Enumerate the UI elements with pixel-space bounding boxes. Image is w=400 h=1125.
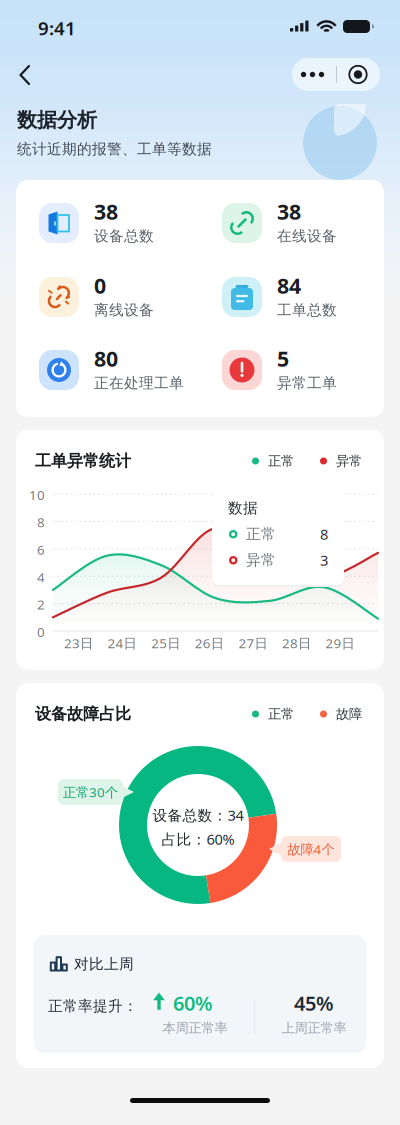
button[interactable]: 0 bbox=[39, 274, 207, 320]
staticText: 8 bbox=[37, 513, 45, 531]
staticText: 正常30个 bbox=[63, 783, 118, 801]
staticText: 正在处理工单 bbox=[94, 374, 184, 392]
staticText: 占比：60% bbox=[161, 829, 234, 849]
staticText: 异常 bbox=[336, 453, 362, 469]
staticText: 3 bbox=[320, 550, 328, 570]
staticText: 故障4个 bbox=[287, 840, 334, 858]
staticText: 上周正常率 bbox=[281, 1020, 346, 1036]
staticText: 9:41 bbox=[38, 16, 76, 40]
staticText: 数据分析 bbox=[17, 108, 97, 132]
staticText: 6 bbox=[37, 541, 45, 558]
staticText: 设备总数 bbox=[94, 227, 154, 245]
staticText: 38 bbox=[277, 197, 301, 226]
staticText: 在线设备 bbox=[277, 227, 337, 245]
staticText: 正常 bbox=[268, 453, 294, 469]
button[interactable]: 更多 bbox=[292, 58, 336, 91]
staticText: 数据 bbox=[228, 499, 258, 517]
button[interactable]: 84 bbox=[222, 274, 390, 320]
staticText: 80 bbox=[94, 344, 118, 373]
staticText: 正常 bbox=[246, 525, 276, 543]
staticText: 设备故障占比 bbox=[35, 704, 131, 724]
staticText: 正常 bbox=[268, 706, 294, 722]
staticText: 60% bbox=[173, 990, 213, 1016]
staticText: 29日 bbox=[326, 634, 355, 652]
staticText: 设备总数：34 bbox=[152, 805, 243, 825]
staticText: 27日 bbox=[238, 634, 267, 652]
staticText: 异常 bbox=[246, 551, 276, 569]
staticText: 工单异常统计 bbox=[35, 451, 131, 471]
button[interactable]: 小程序菜单 bbox=[336, 58, 380, 91]
staticText: 2 bbox=[37, 595, 45, 613]
staticText: 工单总数 bbox=[277, 301, 337, 319]
staticText: 离线设备 bbox=[94, 301, 154, 319]
button[interactable]: 80 bbox=[39, 347, 207, 393]
staticText: 统计近期的报警、工单等数据 bbox=[17, 140, 212, 158]
staticText: 4 bbox=[37, 568, 45, 586]
staticText: 0 bbox=[94, 271, 106, 300]
staticText: 84 bbox=[277, 271, 301, 300]
staticText: 24日 bbox=[108, 634, 137, 652]
staticText: 0 bbox=[37, 623, 45, 641]
staticText: 25日 bbox=[151, 634, 180, 652]
staticText: 26日 bbox=[195, 634, 224, 652]
button[interactable]: 38 bbox=[39, 200, 207, 246]
staticText: 5 bbox=[277, 344, 289, 373]
staticText: 对比上周 bbox=[74, 955, 134, 973]
staticText: 23日 bbox=[64, 634, 93, 652]
staticText: 28日 bbox=[282, 634, 311, 652]
staticText: 异常工单 bbox=[277, 374, 337, 392]
staticText: 38 bbox=[94, 197, 118, 226]
staticText: 45% bbox=[294, 990, 334, 1016]
button[interactable]: 38 bbox=[222, 200, 390, 246]
staticText: 10 bbox=[29, 486, 45, 504]
staticText: 故障 bbox=[336, 706, 362, 722]
button[interactable]: 返回 bbox=[7, 54, 49, 96]
button[interactable]: 5 bbox=[222, 347, 390, 393]
staticText: 正常率提升： bbox=[48, 997, 138, 1015]
staticText: 8 bbox=[320, 524, 328, 544]
staticText: 本周正常率 bbox=[162, 1020, 227, 1036]
